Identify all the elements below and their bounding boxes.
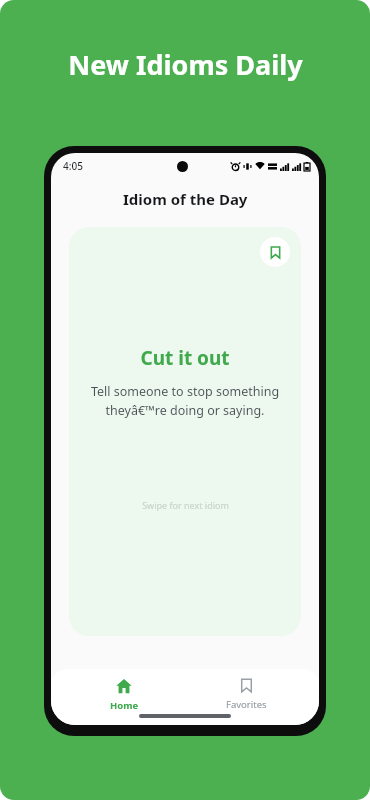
staticText: New Idioms Daily [68,46,303,83]
button[interactable]: Home [76,669,172,725]
staticText: Swipe for next idiom [142,499,229,511]
staticText: 4:05 [63,159,83,173]
staticText: Idiom of the Day [123,189,248,209]
staticText: Tell someone to stop something theyâ€™re… [85,383,285,419]
staticText: Favorites [226,698,267,711]
button[interactable]: Bookmark idiom [69,227,301,636]
button[interactable]: Favorites [198,669,294,725]
staticText: Cut it out [140,345,230,371]
button[interactable]: Bookmark idiom [260,237,290,267]
staticText: Home [110,699,139,712]
